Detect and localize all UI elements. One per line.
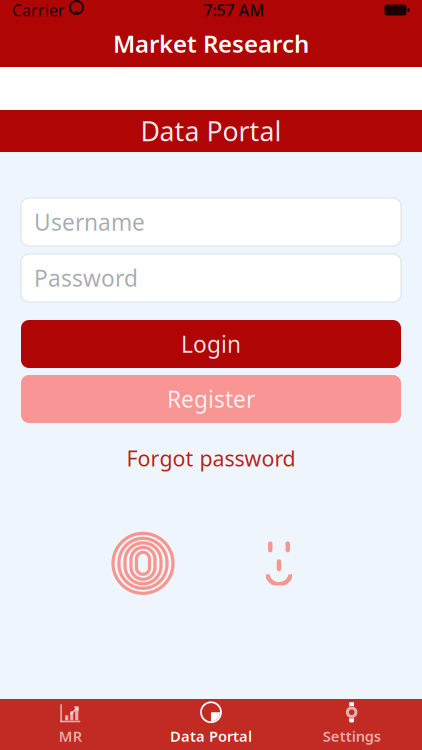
staticText: Password [34, 263, 138, 293]
button[interactable]: Register [21, 375, 401, 423]
staticText: Data Portal [170, 726, 252, 746]
staticText: ↗ [68, 702, 80, 719]
button[interactable]: ↗ [0, 695, 141, 750]
button[interactable]: Sign in with Touch ID [111, 530, 175, 596]
staticText: Username [34, 207, 145, 237]
button[interactable]: Settings [281, 695, 422, 750]
staticText: Market Research [113, 28, 309, 59]
staticText: Carrier [12, 0, 65, 21]
staticText: Register [167, 384, 255, 414]
button[interactable]: Login [21, 320, 401, 368]
button[interactable]: Forgot password [21, 444, 401, 472]
staticText: Data Portal [140, 113, 281, 149]
staticText: MR [59, 726, 82, 746]
button[interactable]: Data Portal [141, 695, 281, 750]
button[interactable]: Sign in with Face ID [247, 530, 311, 596]
staticText: Login [181, 329, 241, 359]
staticText: 7:57 AM [203, 0, 264, 21]
staticText: Settings [323, 726, 381, 746]
staticText: Forgot password [126, 444, 295, 472]
